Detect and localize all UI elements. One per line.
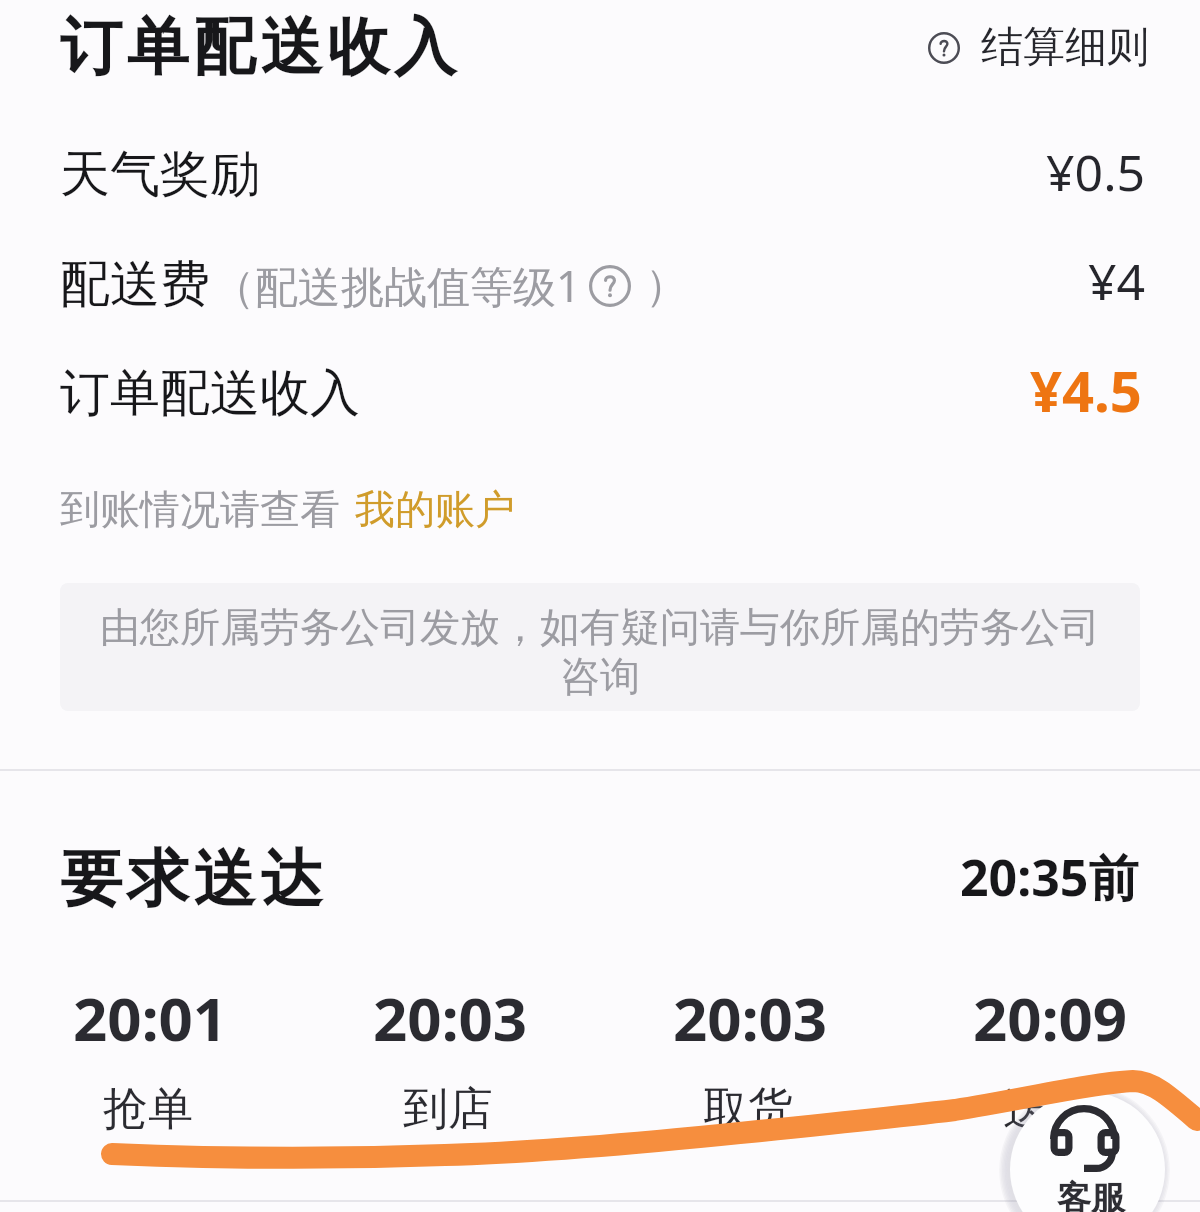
staticText: （配送挑战值等级1 — [212, 256, 581, 315]
staticText: ¥4 — [1088, 247, 1146, 315]
staticText: 到店 — [403, 1081, 493, 1138]
staticText: 到账情况请查看 — [60, 484, 340, 534]
staticText: 抢单 — [103, 1081, 193, 1138]
staticText: ¥4.5 — [1030, 352, 1142, 428]
staticText: 取货 — [703, 1081, 793, 1138]
button[interactable]: 结算细则 — [916, 9, 1161, 86]
staticText: 20:35前 — [960, 843, 1139, 911]
staticText: 20:03 — [373, 977, 528, 1059]
staticText: 送达 — [1003, 1081, 1093, 1138]
staticText: 订单配送收入 — [60, 8, 461, 86]
staticText: 20:01 — [73, 977, 228, 1059]
staticText: 要求送达 — [60, 840, 328, 918]
staticText: 天气奖励 — [60, 143, 260, 206]
staticText: 订单配送收入 — [60, 362, 360, 425]
staticText: 配送费 — [60, 253, 210, 316]
staticText: ¥0.5 — [1046, 138, 1146, 206]
staticText: 客服 — [1057, 1177, 1125, 1212]
staticText: 结算细则 — [981, 21, 1149, 74]
staticText: ） — [645, 259, 688, 313]
staticText: 20:09 — [973, 977, 1128, 1059]
staticText: 由您所属劳务公司发放，如有疑问请与你所属的劳务公司 咨询 — [100, 602, 1100, 702]
button[interactable]: 客服 — [1010, 1092, 1165, 1212]
staticText: 20:03 — [673, 977, 828, 1059]
button[interactable]: 我的账户 — [355, 484, 515, 534]
